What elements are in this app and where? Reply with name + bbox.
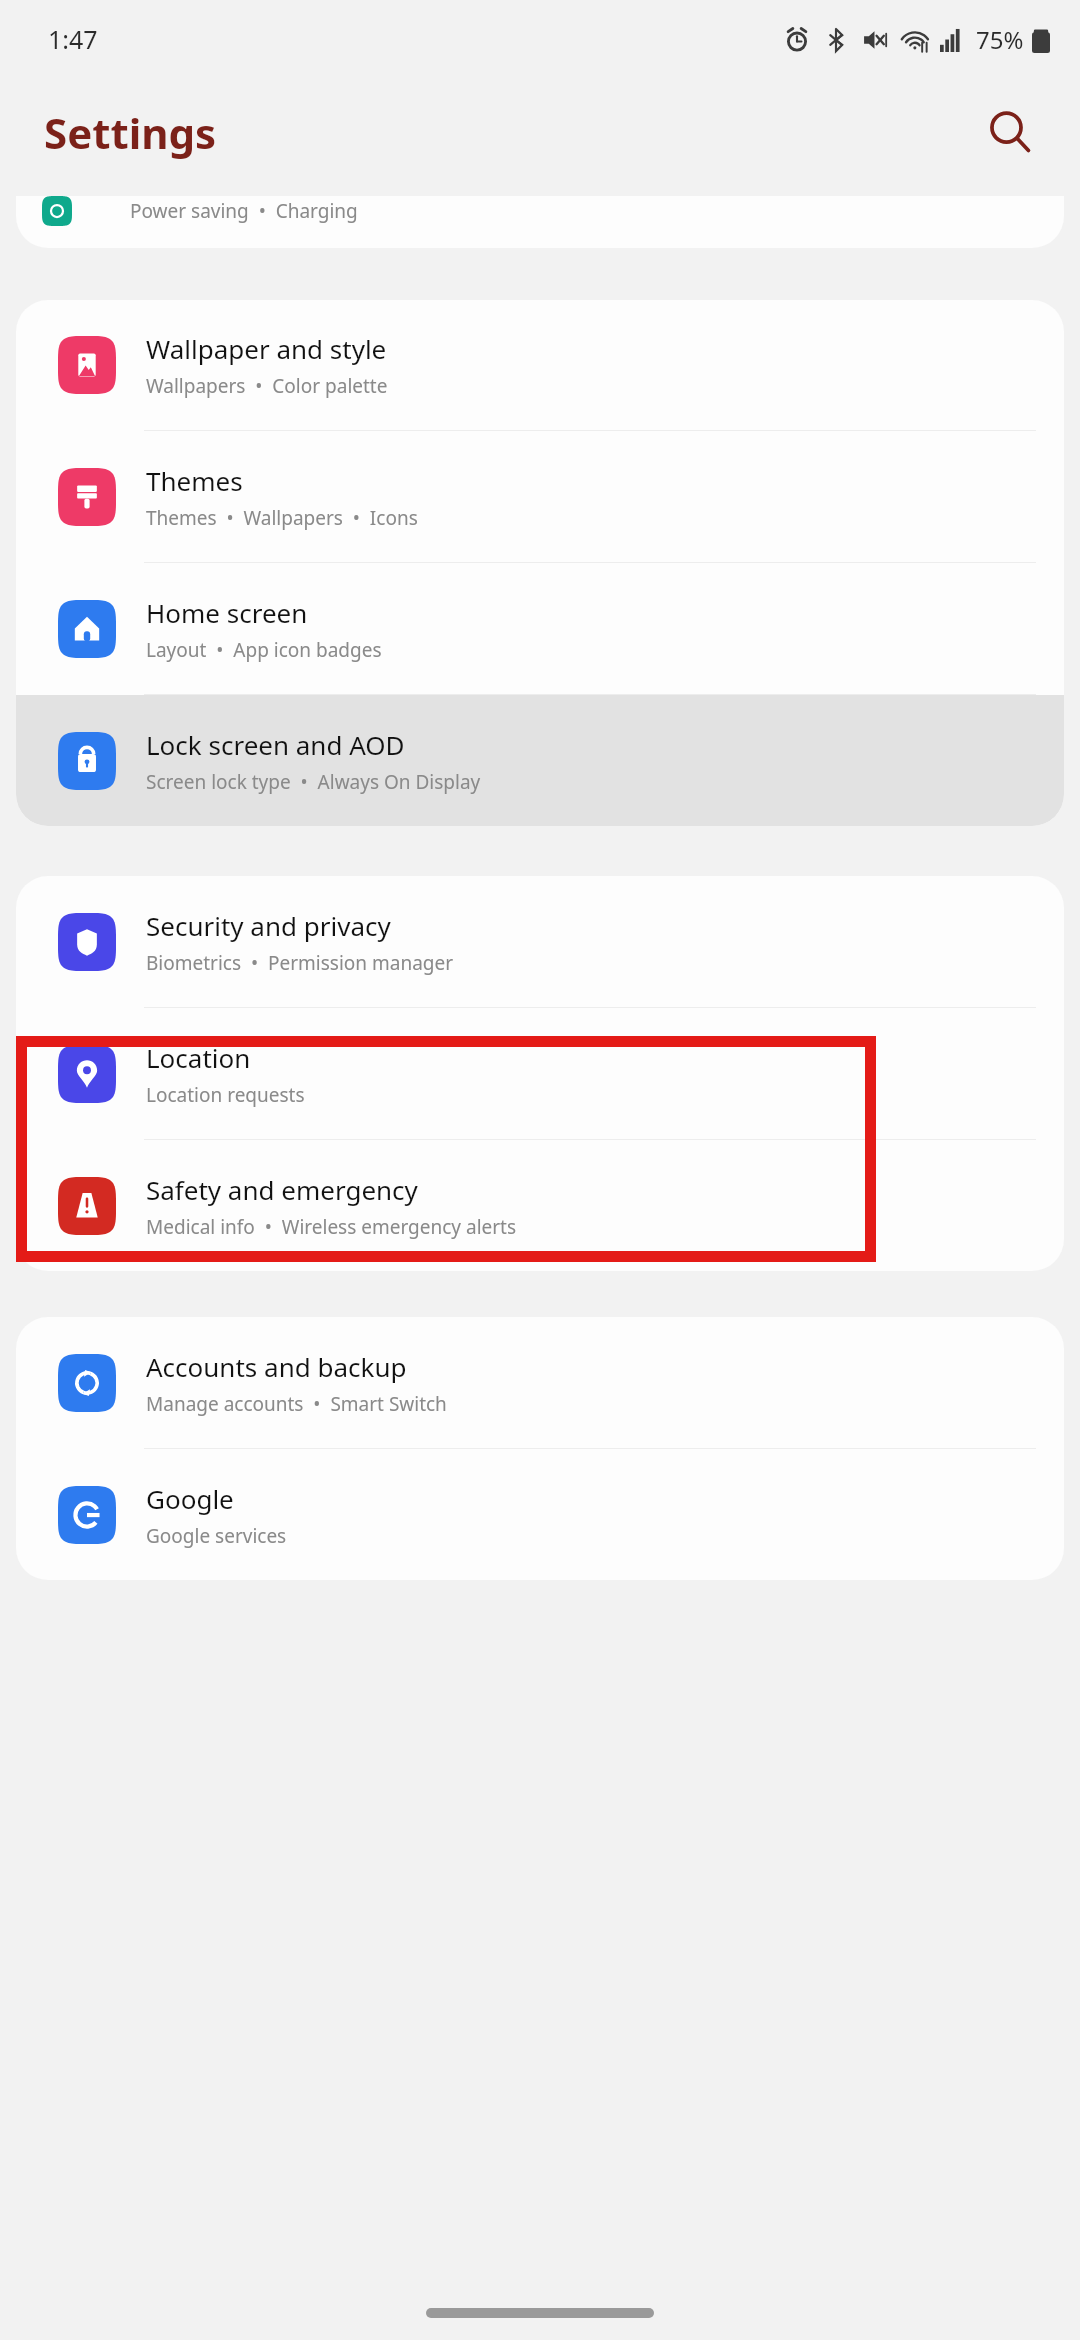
staticText: Settings xyxy=(44,104,217,161)
staticText: Google xyxy=(146,1481,234,1516)
staticText: Security and privacy xyxy=(146,908,391,943)
staticText: Wallpapers • Color palette xyxy=(146,373,388,399)
staticText: Medical info • Wireless emergency alerts xyxy=(146,1214,517,1240)
button[interactable]: Themes xyxy=(16,431,1064,562)
staticText: Manage accounts • Smart Switch xyxy=(146,1391,447,1417)
button[interactable]: Home screen xyxy=(16,563,1064,694)
staticText: Themes xyxy=(146,463,243,498)
staticText: Screen lock type • Always On Display xyxy=(146,769,481,795)
staticText: 75% xyxy=(976,23,1024,56)
button[interactable]: Power saving • Charging xyxy=(16,196,1064,248)
staticText: Safety and emergency xyxy=(146,1172,418,1207)
staticText: Themes • Wallpapers • Icons xyxy=(146,505,418,531)
staticText: Location xyxy=(146,1040,251,1075)
staticText: Accounts and backup xyxy=(146,1349,407,1384)
staticText: Google services xyxy=(146,1523,287,1549)
button[interactable]: Wallpaper and style xyxy=(16,300,1064,430)
button[interactable]: Search xyxy=(974,96,1046,168)
staticText: Biometrics • Permission manager xyxy=(146,950,454,976)
button[interactable]: Lock screen and AOD xyxy=(16,695,1064,826)
staticText: Wallpaper and style xyxy=(146,331,387,366)
button[interactable]: Security and privacy xyxy=(16,876,1064,1007)
button[interactable]: Google xyxy=(16,1449,1064,1580)
button[interactable]: Safety and emergency xyxy=(16,1140,1064,1271)
button[interactable]: Location xyxy=(16,1008,1064,1139)
staticText: Home screen xyxy=(146,595,308,630)
staticText: 1:47 xyxy=(48,22,98,56)
staticText: Lock screen and AOD xyxy=(146,727,405,762)
staticText: Power saving • Charging xyxy=(130,198,358,224)
staticText: Layout • App icon badges xyxy=(146,637,382,663)
button[interactable]: Accounts and backup xyxy=(16,1317,1064,1448)
staticText: Location requests xyxy=(146,1082,305,1108)
